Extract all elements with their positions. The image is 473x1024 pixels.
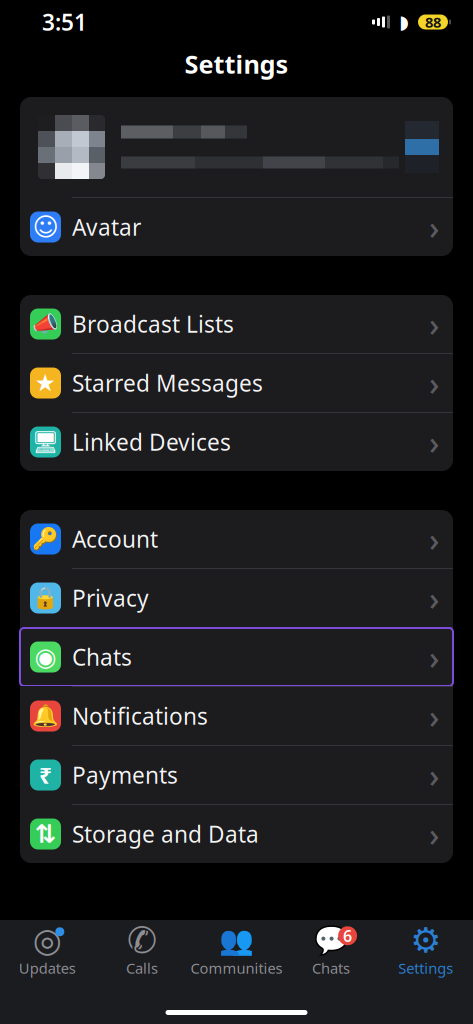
staticText: ₹ <box>39 760 52 790</box>
staticText: ◎ <box>33 921 62 959</box>
staticText: 🔔 <box>32 704 59 728</box>
staticText: › <box>429 518 439 560</box>
staticText: Payments <box>72 760 178 790</box>
button[interactable]: ☺ <box>20 198 453 256</box>
staticText: 👥 <box>219 924 254 956</box>
button[interactable]: ₹ <box>20 746 453 804</box>
staticText: Updates <box>19 958 76 978</box>
staticText: Privacy <box>72 583 149 613</box>
staticText: › <box>429 577 439 619</box>
staticText: Linked Devices <box>72 427 231 457</box>
staticText: Account <box>72 524 158 554</box>
button[interactable]: 🔔 <box>20 687 453 745</box>
staticText: › <box>429 754 439 796</box>
button[interactable] <box>20 97 453 197</box>
staticText: › <box>429 636 439 678</box>
button[interactable]: 📣 <box>20 295 453 353</box>
button[interactable]: ⚙ <box>378 926 473 978</box>
staticText: ⇅ <box>35 820 56 848</box>
button[interactable]: 🔑 <box>20 510 453 568</box>
button[interactable]: 🖥 <box>20 413 453 471</box>
staticText: ☺ <box>32 213 58 241</box>
staticText: Broadcast Lists <box>72 309 234 339</box>
staticText: ✆ <box>127 920 157 961</box>
staticText: 📣 <box>32 312 59 336</box>
staticText: Chats <box>312 958 350 978</box>
staticText: 💬 <box>314 924 349 956</box>
staticText: 🔑 <box>32 527 59 551</box>
staticText: 88 <box>425 12 441 32</box>
staticText: ★ <box>34 369 56 397</box>
staticText: Starred Messages <box>72 368 263 398</box>
button[interactable]: ◉ <box>20 628 453 686</box>
staticText: › <box>429 421 439 463</box>
staticText: Communities <box>190 958 282 978</box>
staticText: Chats <box>72 642 132 672</box>
button[interactable]: ✆ <box>95 926 189 978</box>
staticText: Settings <box>184 47 288 81</box>
staticText: Avatar <box>72 212 141 242</box>
staticText: Settings <box>398 958 453 978</box>
staticText: › <box>429 362 439 404</box>
staticText: Calls <box>126 958 158 978</box>
staticText: › <box>429 206 439 248</box>
staticText: ◉ <box>34 643 56 671</box>
button[interactable]: ◎ <box>0 926 95 978</box>
staticText: 3:51 <box>42 7 87 37</box>
staticText: 6 <box>343 925 352 946</box>
staticText: ⚙ <box>410 921 441 960</box>
staticText: › <box>429 813 439 855</box>
staticText: › <box>429 695 439 737</box>
staticText: › <box>429 303 439 345</box>
button[interactable]: 💬 <box>284 926 378 978</box>
staticText: 🔒 <box>32 586 59 610</box>
button[interactable]: 👥 <box>189 926 284 978</box>
staticText: 🖥 <box>32 430 59 454</box>
button[interactable]: ★ <box>20 354 453 412</box>
staticText: Notifications <box>72 701 208 731</box>
staticText: ◗ <box>399 11 409 33</box>
button[interactable]: ⇅ <box>20 805 453 863</box>
staticText: Storage and Data <box>72 819 259 849</box>
button[interactable]: 🔒 <box>20 569 453 627</box>
